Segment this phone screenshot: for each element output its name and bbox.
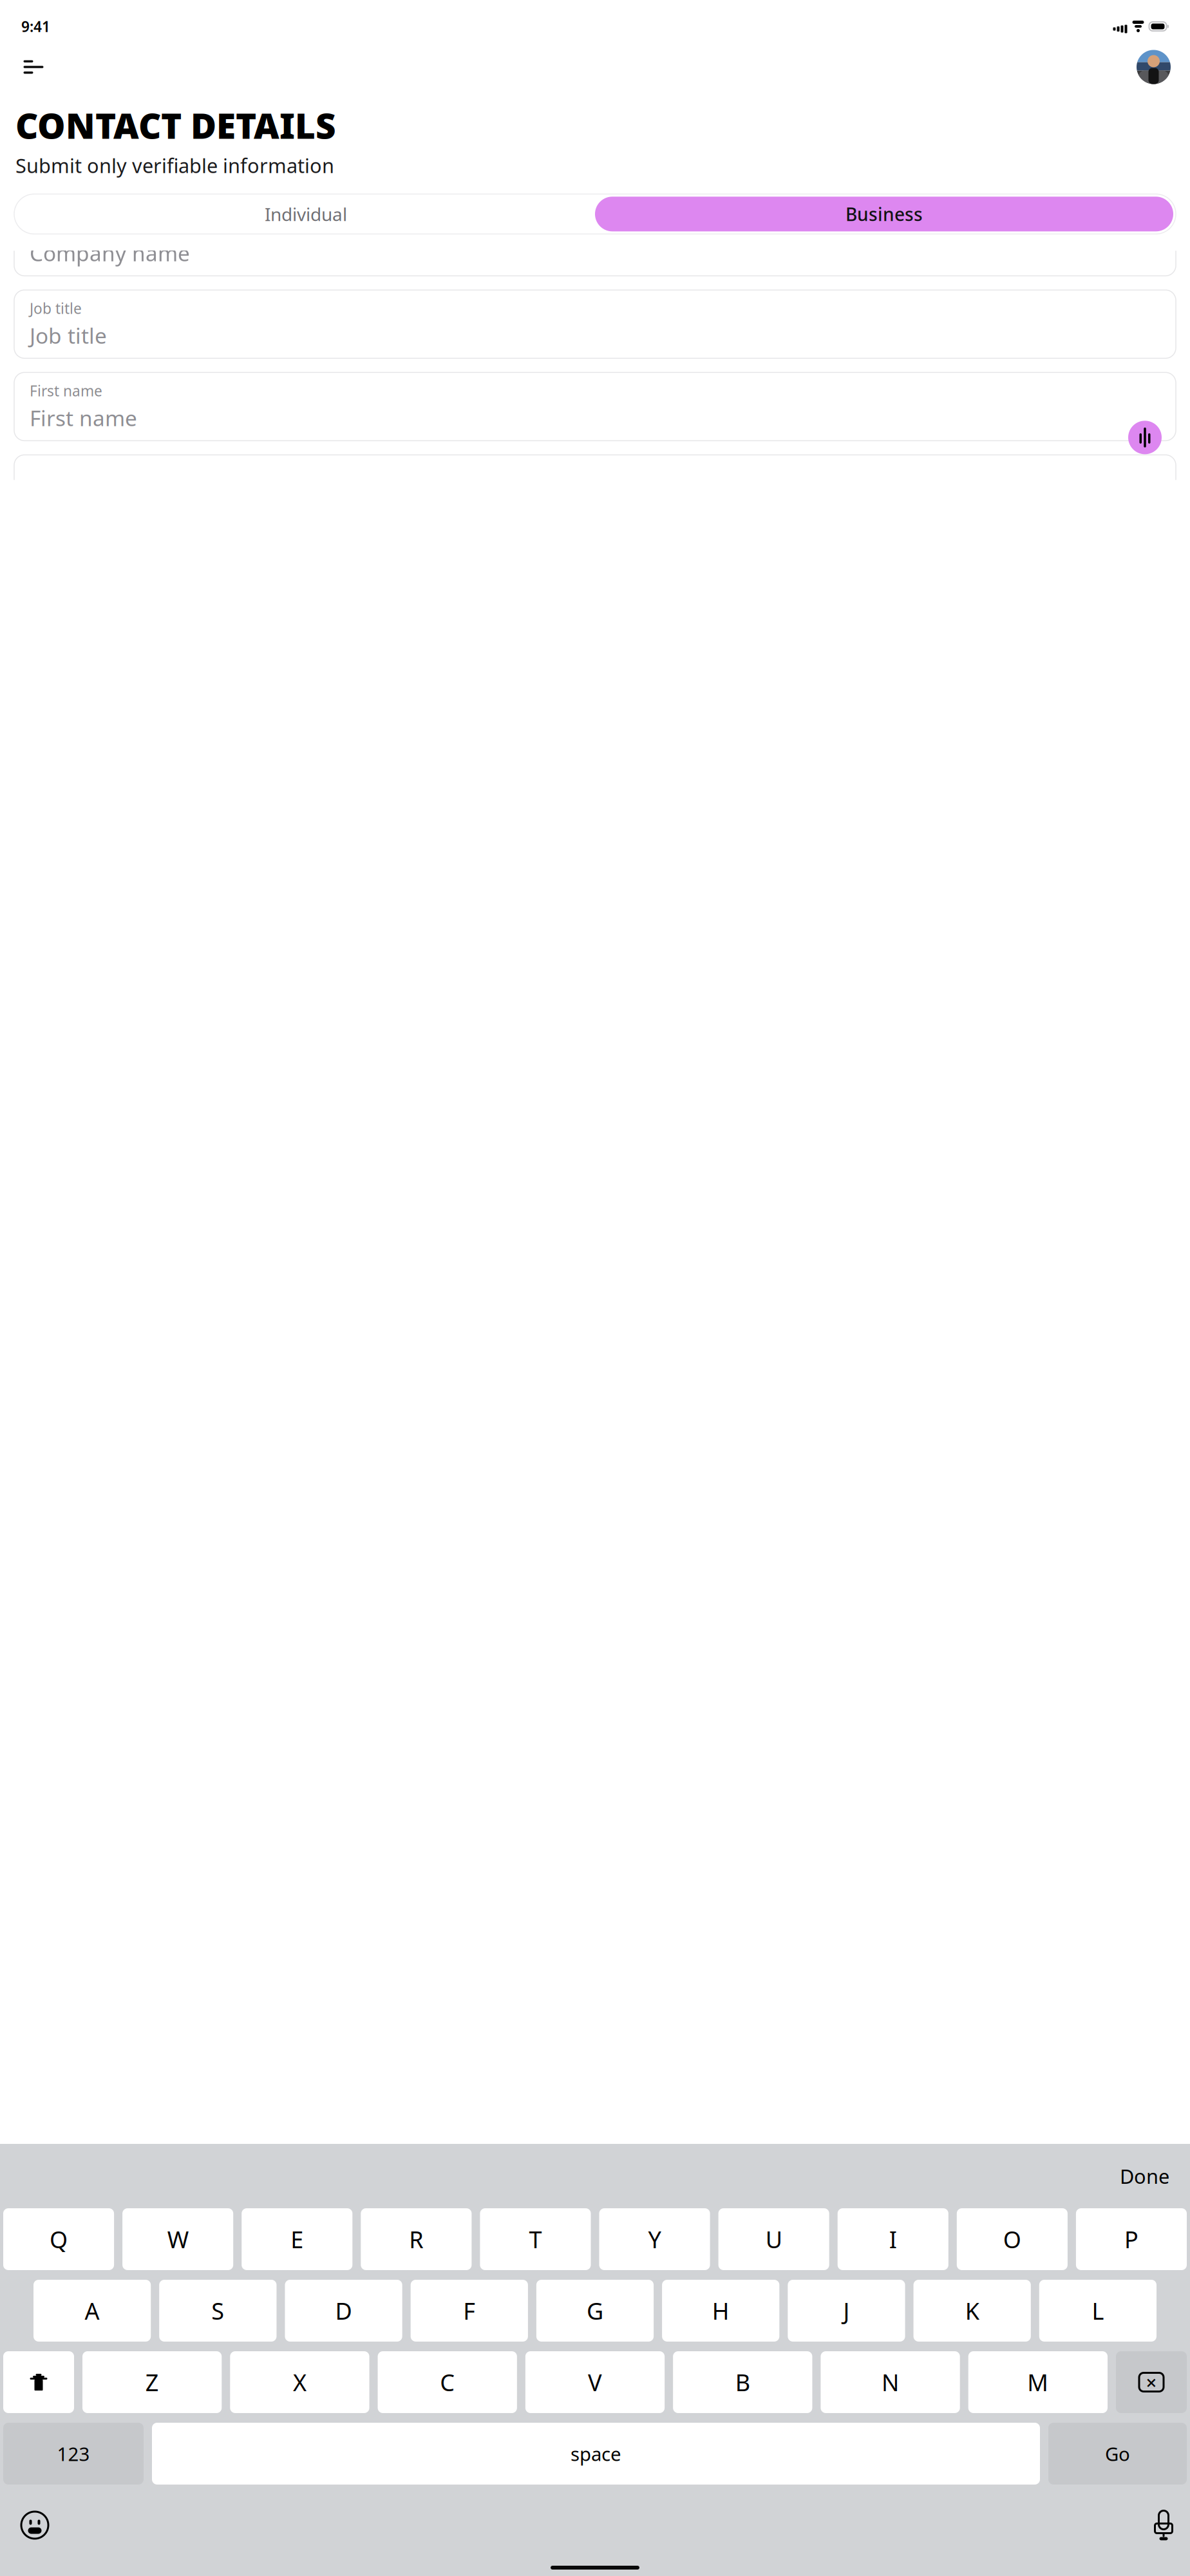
button[interactable]: 123 — [3, 2423, 144, 2485]
staticText: Job title — [30, 299, 82, 318]
staticText: R — [409, 2224, 423, 2255]
button[interactable]: First name — [14, 372, 1176, 441]
staticText: Q — [50, 2224, 68, 2255]
button[interactable]: G — [536, 2280, 654, 2342]
button[interactable]: Dictation — [1154, 2510, 1173, 2541]
button[interactable]: R — [361, 2208, 472, 2270]
staticText: First name — [30, 404, 137, 432]
button[interactable]: Profile — [1137, 50, 1171, 84]
staticText: CONTACT DETAILS — [15, 102, 336, 149]
button[interactable]: Done — [1110, 2158, 1180, 2194]
staticText: Company name — [30, 239, 190, 267]
button[interactable]: Company name — [14, 208, 1176, 276]
staticText: C — [440, 2367, 455, 2398]
button[interactable]: F — [411, 2280, 528, 2342]
staticText: N — [882, 2367, 899, 2398]
staticText: Done — [1120, 2163, 1169, 2189]
staticText: Go — [1105, 2441, 1130, 2466]
staticText: X — [293, 2367, 306, 2398]
button[interactable]: E — [242, 2208, 352, 2270]
button[interactable]: X — [230, 2351, 369, 2413]
button[interactable]: H — [662, 2280, 779, 2342]
button[interactable]: V — [525, 2351, 665, 2413]
staticText: I — [889, 2224, 897, 2255]
staticText: H — [712, 2295, 729, 2326]
staticText: A — [85, 2295, 100, 2326]
button[interactable]: Individual — [17, 197, 595, 231]
staticText: T — [529, 2224, 542, 2255]
button[interactable]: P — [1076, 2208, 1187, 2270]
button[interactable]: O — [957, 2208, 1068, 2270]
staticText: G — [587, 2295, 603, 2326]
staticText: O — [1003, 2224, 1021, 2255]
button[interactable]: Q — [3, 2208, 114, 2270]
staticText: J — [843, 2295, 850, 2326]
button[interactable]: Z — [82, 2351, 222, 2413]
button[interactable]: S — [159, 2280, 277, 2342]
button[interactable]: Next field — [1128, 421, 1162, 454]
button[interactable]: T — [480, 2208, 591, 2270]
staticText: L — [1092, 2295, 1104, 2326]
staticText: U — [765, 2224, 782, 2255]
staticText: S — [211, 2295, 224, 2326]
button[interactable]: N — [821, 2351, 960, 2413]
staticText: B — [735, 2367, 750, 2398]
staticText: space — [571, 2441, 621, 2466]
button[interactable]: U — [718, 2208, 829, 2270]
button[interactable]: M — [968, 2351, 1108, 2413]
button[interactable]: A — [33, 2280, 151, 2342]
staticText: Y — [648, 2224, 661, 2255]
button[interactable]: Business — [595, 197, 1173, 231]
staticText: 9:41 — [21, 17, 50, 36]
button[interactable]: Delete — [1116, 2351, 1187, 2413]
staticText: First name — [30, 381, 102, 400]
button[interactable]: L — [1039, 2280, 1157, 2342]
staticText: Submit only verifiable information — [15, 152, 334, 179]
button[interactable]: Go — [1048, 2423, 1187, 2485]
staticText: Individual — [265, 202, 347, 226]
button[interactable]: Emoji — [17, 2507, 53, 2543]
staticText: P — [1124, 2224, 1138, 2255]
button[interactable]: Job title — [14, 290, 1176, 358]
staticText: Z — [145, 2367, 159, 2398]
staticText: × — [1146, 2370, 1157, 2395]
button[interactable]: Back — [19, 53, 48, 81]
staticText: Business — [845, 202, 923, 226]
staticText: F — [463, 2295, 475, 2326]
staticText: D — [335, 2295, 352, 2326]
button[interactable]: space — [152, 2423, 1040, 2485]
staticText: V — [588, 2367, 602, 2398]
button[interactable]: K — [913, 2280, 1031, 2342]
button[interactable]: I — [838, 2208, 948, 2270]
staticText: M — [1027, 2367, 1049, 2398]
staticText: K — [965, 2295, 979, 2326]
button[interactable]: Y — [599, 2208, 710, 2270]
staticText: 123 — [57, 2441, 90, 2466]
button[interactable]: D — [285, 2280, 402, 2342]
staticText: Job title — [30, 321, 107, 350]
button[interactable]: J — [788, 2280, 905, 2342]
staticText: Company name — [30, 216, 138, 236]
button[interactable]: W — [122, 2208, 233, 2270]
button[interactable]: Shift — [3, 2351, 74, 2413]
staticText: W — [167, 2224, 188, 2255]
staticText: E — [291, 2224, 303, 2255]
button[interactable]: B — [673, 2351, 812, 2413]
button[interactable]: C — [378, 2351, 517, 2413]
